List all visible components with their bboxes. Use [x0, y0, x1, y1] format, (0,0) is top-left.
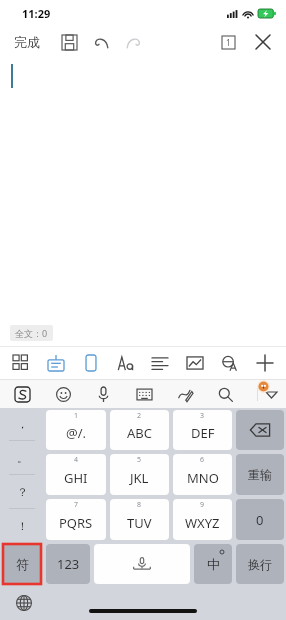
staticText: 3 [200, 411, 205, 421]
button[interactable]: 0 [236, 499, 284, 540]
button[interactable]: 完成 [10, 29, 44, 55]
button[interactable]: 7 [46, 499, 106, 540]
staticText: 9 [200, 500, 205, 510]
button[interactable]: Translate [217, 350, 243, 376]
button[interactable]: 3 [173, 410, 232, 450]
staticText: 换行 [248, 557, 272, 572]
button[interactable]: Voice input [87, 381, 119, 407]
staticText: 符 [16, 556, 29, 572]
button[interactable]: Blocks [8, 350, 34, 376]
button[interactable]: Page view [78, 350, 104, 376]
button[interactable]: Image [182, 350, 208, 376]
button[interactable]: Align [147, 350, 173, 376]
staticText: 7 [74, 500, 79, 510]
button[interactable]: 6 [173, 454, 232, 495]
staticText: ， [17, 417, 28, 431]
button[interactable]: 9 [173, 499, 232, 540]
staticText: @/. [66, 424, 87, 442]
button[interactable]: 8 [110, 499, 169, 540]
button[interactable]: Search [209, 381, 241, 407]
staticText: 2 [137, 411, 142, 421]
staticText: 全文：0 [15, 327, 48, 339]
button[interactable]: ！ [0, 509, 44, 542]
button[interactable]: Handwriting [169, 381, 201, 407]
staticText: 11:29 [22, 6, 51, 21]
button[interactable]: Add [252, 350, 278, 376]
button[interactable]: 4 [46, 454, 106, 495]
button[interactable]: 123 [46, 544, 90, 584]
staticText: 1 [74, 411, 79, 421]
staticText: ？ [17, 485, 28, 499]
button[interactable]: Undo [88, 29, 114, 55]
button[interactable]: Redo [120, 29, 146, 55]
staticText: 123 [57, 555, 80, 573]
button[interactable]: 重输 [236, 454, 284, 495]
button[interactable]: Switch language [12, 591, 36, 615]
staticText: 0 [256, 511, 264, 529]
button[interactable]: Space, voice input [94, 544, 190, 584]
button[interactable]: Keyboard [128, 381, 160, 407]
staticText: JKL [130, 469, 149, 487]
button[interactable]: 。 [0, 441, 44, 474]
button[interactable]: 换行 [236, 544, 284, 584]
button[interactable]: 1 [46, 410, 106, 450]
staticText: 。 [17, 451, 28, 465]
button[interactable]: Page count [216, 30, 240, 54]
button[interactable]: Emoji [47, 381, 79, 407]
button[interactable]: Panel [43, 350, 69, 376]
button[interactable]: Collapse keyboard [250, 380, 284, 408]
button[interactable]: 2 [110, 410, 169, 450]
staticText: WXYZ [185, 514, 220, 532]
staticText: 重输 [248, 467, 272, 482]
button[interactable]: 中 [194, 544, 232, 584]
staticText: ！ [17, 519, 28, 533]
staticText: 4 [74, 455, 79, 465]
staticText: ABC [127, 424, 152, 442]
staticText: 完成 [14, 34, 40, 50]
button[interactable]: Sogou input [6, 381, 38, 407]
button[interactable]: Font [113, 350, 139, 376]
button[interactable]: Close [250, 29, 276, 55]
staticText: 1 [226, 37, 231, 48]
staticText: 8 [137, 500, 142, 510]
staticText: TUV [127, 514, 152, 532]
button[interactable]: ， [0, 408, 44, 440]
staticText: MNO [187, 469, 219, 487]
staticText: DEF [191, 424, 215, 442]
button[interactable]: ？ [0, 475, 44, 508]
button[interactable]: Backspace [236, 410, 284, 450]
staticText: 6 [200, 455, 205, 465]
staticText: GHI [64, 469, 88, 487]
button[interactable]: Save [56, 29, 82, 55]
staticText: 5 [137, 455, 142, 465]
staticText: PQRS [59, 514, 93, 532]
staticText: 中 [207, 556, 220, 572]
button[interactable]: 符 [3, 544, 41, 584]
button[interactable]: 5 [110, 454, 169, 495]
